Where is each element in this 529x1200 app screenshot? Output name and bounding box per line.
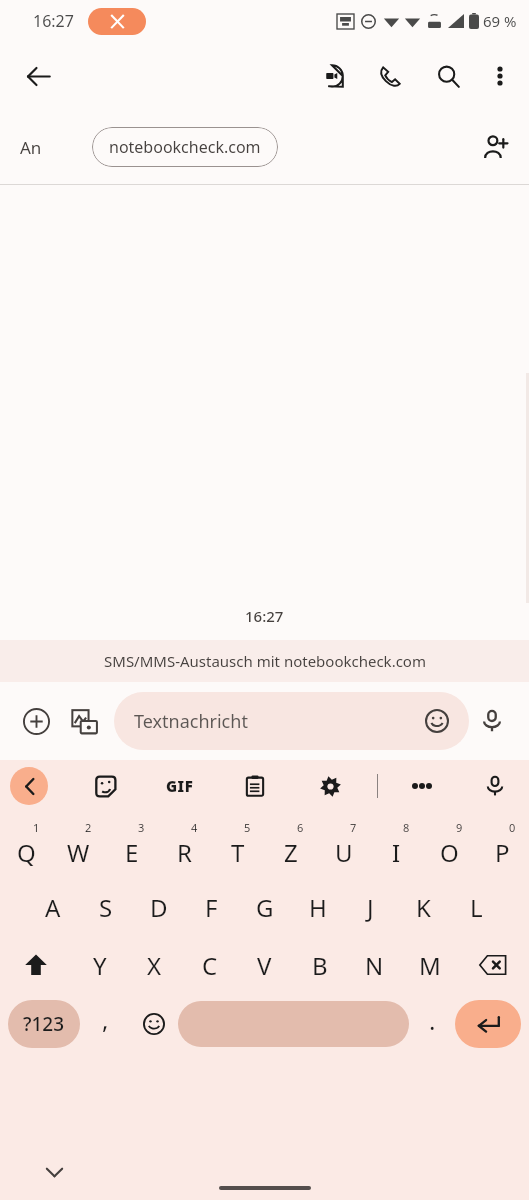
button[interactable]: V <box>237 936 292 994</box>
button[interactable]: A <box>26 878 79 936</box>
staticText: B <box>312 949 328 982</box>
button[interactable]: ?123 <box>8 1000 80 1048</box>
staticText: 16:27 <box>33 10 74 32</box>
staticText: I <box>392 836 401 869</box>
staticText: K <box>416 891 431 924</box>
button[interactable]: Emoji <box>417 701 457 741</box>
staticText: . <box>429 1004 436 1037</box>
button[interactable]: . <box>409 994 455 1054</box>
staticText: 8 <box>403 820 410 835</box>
button[interactable]: Gallery <box>62 699 106 743</box>
button[interactable]: Emoji <box>130 994 178 1054</box>
staticText: 69 % <box>483 11 517 31</box>
button[interactable]: Settings <box>310 766 350 806</box>
staticText: notebookcheck.com <box>109 136 261 158</box>
button[interactable]: D <box>132 878 185 936</box>
button[interactable]: J <box>344 878 397 936</box>
button[interactable]: Enter <box>455 1000 521 1048</box>
staticText: GIF <box>166 776 194 796</box>
button[interactable]: Video call <box>311 55 353 97</box>
button[interactable]: N <box>347 936 402 994</box>
button[interactable]: GIF <box>158 764 202 808</box>
button[interactable]: K <box>397 878 450 936</box>
staticText: 5 <box>244 820 251 835</box>
staticText: An <box>20 136 42 159</box>
button[interactable]: X <box>127 936 182 994</box>
button[interactable]: Voice typing <box>475 766 515 806</box>
button[interactable]: Add recipient <box>473 125 517 169</box>
staticText: 6 <box>297 820 304 835</box>
staticText: Textnachricht <box>134 709 417 734</box>
staticText: U <box>335 836 353 869</box>
staticText: 4 <box>191 820 198 835</box>
button[interactable]: G <box>238 878 291 936</box>
staticText: T <box>231 836 245 869</box>
button[interactable]: Backspace <box>457 936 529 994</box>
button[interactable]: Q <box>0 820 52 878</box>
button[interactable]: P <box>476 820 529 878</box>
button[interactable]: Call <box>369 55 411 97</box>
button[interactable]: Back <box>14 52 62 100</box>
button[interactable]: Add attachment <box>14 699 58 743</box>
button[interactable]: B <box>292 936 347 994</box>
button[interactable]: Shift <box>0 936 72 994</box>
button[interactable]: Clipboard <box>235 766 275 806</box>
button[interactable]: Stickers <box>85 766 125 806</box>
staticText: 9 <box>456 820 463 835</box>
staticText: F <box>205 891 218 924</box>
staticText: 16:27 <box>245 606 284 626</box>
staticText: J <box>367 891 374 924</box>
button[interactable]: Back to suggestions <box>10 767 48 805</box>
staticText: S <box>99 891 113 924</box>
button[interactable]: E <box>105 820 158 878</box>
staticText: O <box>440 836 459 869</box>
staticText: , <box>102 1003 109 1036</box>
button[interactable]: L <box>450 878 503 936</box>
button[interactable]: More options <box>479 55 521 97</box>
staticText: Z <box>284 836 298 869</box>
staticText: Q <box>17 836 36 869</box>
staticText: A <box>45 891 61 924</box>
staticText: P <box>495 836 510 869</box>
button[interactable]: , <box>80 994 130 1054</box>
staticText: Y <box>93 949 107 982</box>
staticText: ?123 <box>23 1011 65 1037</box>
staticText: 7 <box>350 820 357 835</box>
staticText: 0 <box>509 820 516 835</box>
button[interactable]: Space <box>178 1001 409 1047</box>
staticText: 2 <box>85 820 92 835</box>
button[interactable]: Search <box>427 55 469 97</box>
button[interactable]: M <box>402 936 457 994</box>
button[interactable]: C <box>182 936 237 994</box>
button[interactable]: O <box>423 820 476 878</box>
staticText: C <box>202 949 218 982</box>
button[interactable]: S <box>79 878 132 936</box>
button[interactable]: F <box>185 878 238 936</box>
button[interactable]: H <box>291 878 344 936</box>
staticText: 1 <box>33 820 40 835</box>
button[interactable]: I <box>370 820 423 878</box>
staticText: H <box>309 891 327 924</box>
staticText: X <box>147 949 162 982</box>
staticText: 3 <box>138 820 145 835</box>
staticText: W <box>67 836 90 869</box>
button[interactable]: U <box>317 820 370 878</box>
button[interactable]: Textnachricht <box>114 692 469 750</box>
button[interactable]: T <box>211 820 264 878</box>
button[interactable]: Z <box>264 820 317 878</box>
staticText: N <box>365 949 384 982</box>
staticText: M <box>419 949 441 982</box>
staticText: G <box>256 891 274 924</box>
staticText: D <box>150 891 168 924</box>
button[interactable]: W <box>52 820 105 878</box>
button[interactable]: R <box>158 820 211 878</box>
staticText: L <box>470 891 483 924</box>
button[interactable]: Voice input <box>469 698 515 744</box>
staticText: R <box>177 836 192 869</box>
button[interactable]: More <box>402 766 442 806</box>
button[interactable]: notebookcheck.com <box>92 127 278 167</box>
button[interactable]: Y <box>72 936 127 994</box>
staticText: E <box>125 836 139 869</box>
button[interactable]: Hide keyboard <box>36 1154 72 1190</box>
staticText: V <box>257 949 272 982</box>
